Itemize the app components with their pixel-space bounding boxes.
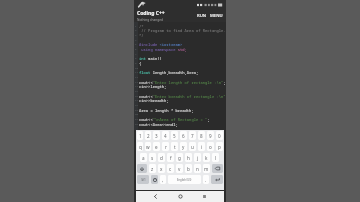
button[interactable]: l — [212, 153, 219, 162]
button[interactable]: Symbols — [137, 175, 149, 184]
button[interactable]: Backspace — [212, 164, 223, 173]
staticText: 13 — [135, 80, 138, 83]
button[interactable]: , — [160, 175, 166, 184]
staticText: w — [146, 144, 150, 150]
staticText: 8 — [135, 56, 137, 59]
button[interactable]: Emoji — [151, 175, 158, 184]
staticText: , — [162, 177, 164, 183]
staticText: z — [151, 166, 154, 172]
button[interactable]: u — [189, 142, 196, 151]
staticText: 17 — [135, 98, 138, 101]
button[interactable]: g — [176, 153, 183, 162]
button[interactable]: 2 — [145, 131, 151, 140]
button[interactable]: a — [140, 153, 147, 162]
button[interactable]: Enter — [211, 175, 223, 184]
button[interactable]: c — [167, 164, 174, 173]
button[interactable]: s — [149, 153, 156, 162]
button[interactable]: 4 — [162, 131, 169, 140]
staticText: 22 — [135, 122, 138, 125]
button[interactable]: 9 — [207, 131, 214, 140]
staticText: e — [155, 144, 158, 150]
staticText: p — [218, 144, 221, 150]
staticText: 14 — [135, 84, 138, 87]
button[interactable]: v — [176, 164, 183, 173]
button[interactable]: 3 — [153, 131, 160, 140]
staticText: 5 — [135, 42, 137, 45]
button[interactable]: m — [203, 164, 210, 173]
staticText: cout<<"Enter breadth of rectangle :\n"; — [139, 94, 226, 99]
button[interactable]: 0 — [216, 131, 223, 140]
staticText: 9 — [135, 61, 137, 64]
button[interactable]: MENU — [208, 9, 224, 22]
button[interactable]: Back — [150, 191, 161, 202]
staticText: 5 — [173, 133, 176, 139]
button[interactable]: p — [216, 142, 223, 151]
button[interactable]: 8 — [198, 131, 205, 140]
staticText: 7 — [135, 52, 137, 55]
button[interactable]: Home — [175, 191, 186, 202]
staticText: cin>>length; — [139, 84, 167, 89]
staticText: s — [151, 155, 154, 161]
staticText: 9 — [209, 133, 212, 139]
staticText: x — [160, 166, 163, 172]
staticText: */ — [139, 33, 144, 38]
button[interactable]: 7 — [189, 131, 196, 140]
button[interactable]: t — [171, 142, 178, 151]
button[interactable]: h — [185, 153, 192, 162]
button[interactable]: f — [167, 153, 174, 162]
staticText: 4 — [164, 133, 167, 139]
button[interactable]: d — [158, 153, 165, 162]
staticText: f — [170, 155, 172, 161]
button[interactable]: i — [198, 142, 205, 151]
staticText: n — [196, 166, 199, 172]
staticText: 4 — [135, 38, 137, 41]
staticText: 16 — [135, 94, 138, 97]
staticText: Nothing changed — [137, 18, 164, 22]
button[interactable]: n — [194, 164, 201, 173]
button[interactable]: j — [194, 153, 201, 162]
staticText: 6 — [135, 47, 137, 50]
staticText: h — [187, 155, 190, 161]
button[interactable]: k — [203, 153, 210, 162]
button[interactable]: Shift — [137, 164, 147, 173]
staticText: 2 — [135, 28, 137, 31]
button[interactable]: e — [153, 142, 160, 151]
button[interactable]: 5 — [171, 131, 178, 140]
staticText: 18 — [135, 103, 138, 106]
button[interactable]: r — [162, 142, 169, 151]
button[interactable]: w — [145, 142, 151, 151]
button[interactable]: . — [203, 175, 209, 184]
button[interactable]: English (US) — [168, 175, 201, 184]
staticText: c — [169, 166, 172, 172]
staticText: y — [182, 144, 185, 150]
button[interactable]: 6 — [180, 131, 187, 140]
button[interactable]: RUN — [195, 9, 208, 22]
button[interactable]: y — [180, 142, 187, 151]
button[interactable]: o — [207, 142, 214, 151]
staticText: MENU — [210, 13, 223, 19]
staticText: 12 — [135, 75, 138, 78]
staticText: 21 — [135, 117, 138, 120]
staticText: r — [165, 144, 167, 150]
staticText: g — [178, 155, 181, 161]
button[interactable]: x — [158, 164, 165, 173]
staticText: 11 — [135, 70, 138, 73]
staticText: u — [191, 144, 194, 150]
staticText: cout<<"\nArea of Rectangle = "; — [139, 117, 210, 122]
staticText: . — [205, 177, 207, 183]
button[interactable]: b — [185, 164, 192, 173]
staticText: int main() — [139, 56, 162, 61]
button[interactable]: z — [149, 164, 156, 173]
staticText: o — [209, 144, 212, 150]
staticText: Area = length * breadth; — [139, 108, 194, 113]
staticText: 2 — [147, 133, 150, 139]
button[interactable]: Recent apps — [199, 191, 210, 202]
staticText: 7 — [191, 133, 194, 139]
button[interactable]: q — [137, 142, 143, 151]
staticText: using namespace std; — [139, 47, 187, 52]
staticText: a — [142, 155, 145, 161]
staticText: t — [174, 144, 176, 150]
button[interactable]: 1 — [137, 131, 143, 140]
staticText: l — [215, 155, 217, 161]
staticText: cin>>breadth; — [139, 98, 169, 103]
